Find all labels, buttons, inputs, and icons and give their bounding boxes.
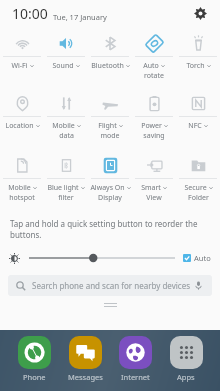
staticText: Wi-Fi [11, 61, 28, 71]
button[interactable]: Bluetooth [88, 28, 132, 88]
button[interactable]: Power [132, 88, 176, 150]
staticText: Torch [186, 61, 205, 71]
button[interactable]: Wi-Fi [0, 28, 44, 88]
staticText: Flight [98, 121, 117, 131]
button[interactable]: Smart [132, 150, 176, 212]
button[interactable]: Always On [88, 150, 132, 212]
staticText: Mobile [52, 121, 75, 131]
staticText: Phone [23, 372, 46, 382]
button[interactable]: Torch [176, 28, 220, 88]
button[interactable]: Internet [112, 336, 158, 382]
staticText: Tap and hold a quick setting button to r… [10, 218, 210, 240]
staticText: Tue, 17 January [53, 12, 107, 22]
staticText: mode [100, 131, 120, 141]
button[interactable]: Auto [132, 28, 176, 88]
staticText: Always On [90, 183, 125, 193]
button[interactable]: Apps [163, 336, 209, 382]
staticText: Apps [177, 372, 195, 382]
staticText: Auto [194, 253, 211, 263]
button[interactable]: Phone [11, 336, 57, 382]
staticText: Smart [141, 183, 161, 193]
staticText: Display [98, 193, 122, 203]
staticText: Auto [143, 61, 159, 71]
button[interactable]: Flight [88, 88, 132, 150]
staticText: 10:00 [12, 4, 48, 23]
staticText: Folder [188, 193, 209, 203]
button[interactable]: Mobile [44, 88, 88, 150]
button[interactable]: Location [0, 88, 44, 150]
button[interactable]: Mobile [0, 150, 44, 212]
staticText: Sound [52, 61, 74, 71]
button[interactable]: Secure [176, 150, 220, 212]
staticText: Bluetooth [91, 61, 124, 71]
staticText: Location [5, 121, 34, 131]
button[interactable]: Auto [183, 253, 211, 263]
staticText: View [146, 193, 162, 203]
button[interactable]: Settings [188, 1, 212, 25]
staticText: Secure [184, 183, 207, 193]
button[interactable]: Blue light [44, 150, 88, 212]
button[interactable]: NFC [176, 88, 220, 150]
button[interactable]: Sound [44, 28, 88, 88]
button[interactable]: Search phone and scan for nearby devices [8, 275, 212, 296]
button[interactable]: Messages [62, 336, 108, 382]
staticText: hotspot [9, 193, 35, 203]
staticText: Messages [68, 372, 103, 382]
button[interactable]: Voice search [193, 280, 204, 291]
staticText: Internet [121, 372, 150, 382]
staticText: data [59, 131, 74, 141]
staticText: saving [143, 131, 165, 141]
staticText: rotate [144, 71, 164, 81]
staticText: filter [58, 193, 74, 203]
staticText: NFC [188, 121, 202, 131]
staticText: Blue light [47, 183, 79, 193]
staticText: Power [141, 121, 162, 131]
staticText: Search phone and scan for nearby devices [32, 280, 190, 291]
staticText: Mobile [8, 183, 31, 193]
